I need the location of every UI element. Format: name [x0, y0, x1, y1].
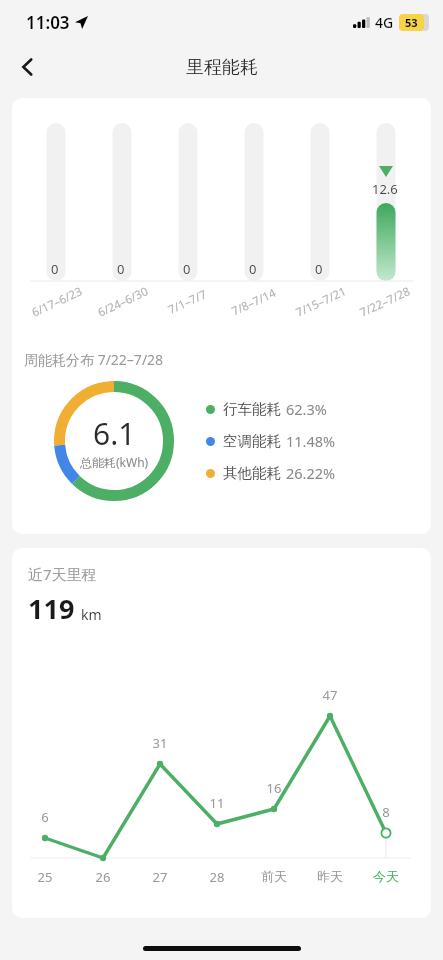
- staticText: 28: [201, 868, 233, 886]
- staticText: 25: [29, 868, 61, 886]
- button[interactable]: 行车能耗: [206, 399, 327, 419]
- staticText: 0: [51, 260, 59, 278]
- button[interactable]: 其他能耗: [206, 463, 336, 483]
- button[interactable]: Back: [8, 47, 48, 87]
- button[interactable]: 昨天: [314, 868, 346, 884]
- staticText: 空调能耗: [223, 432, 281, 450]
- staticText: 其他能耗: [223, 464, 281, 482]
- staticText: 7/22–7/28: [357, 283, 413, 321]
- staticText: 26: [87, 868, 119, 886]
- staticText: 119: [28, 590, 75, 627]
- staticText: 8: [372, 803, 400, 821]
- button[interactable]: 今天: [370, 868, 402, 884]
- staticText: 6/17–6/23: [29, 283, 85, 321]
- staticText: 16: [260, 779, 288, 797]
- staticText: 前天: [258, 868, 290, 884]
- button[interactable]: 26: [87, 868, 119, 886]
- staticText: 31: [146, 734, 174, 752]
- staticText: km: [81, 605, 102, 624]
- staticText: 12.6: [372, 180, 398, 198]
- button[interactable]: 27: [144, 868, 176, 886]
- button[interactable]: 前天: [258, 868, 290, 884]
- staticText: 7/1–7/7: [165, 286, 209, 318]
- staticText: 里程能耗: [186, 56, 258, 79]
- staticText: 6: [31, 808, 59, 826]
- staticText: 0: [249, 260, 257, 278]
- staticText: 7/8–7/14: [229, 285, 279, 319]
- staticText: 0: [117, 260, 125, 278]
- staticText: 26.22%: [286, 463, 336, 483]
- staticText: 周能耗分布 7/22–7/28: [24, 350, 164, 369]
- staticText: 11: [203, 794, 231, 812]
- button[interactable]: 28: [201, 868, 233, 886]
- staticText: 11.48%: [286, 431, 336, 451]
- staticText: 行车能耗: [223, 400, 281, 418]
- staticText: 47: [316, 686, 344, 704]
- button[interactable]: 25: [29, 868, 61, 886]
- staticText: 总能耗(kWh): [80, 454, 149, 470]
- staticText: 6/24–6/30: [95, 283, 151, 321]
- staticText: 0: [183, 260, 191, 278]
- staticText: 7/15–7/21: [293, 283, 349, 321]
- staticText: 0: [315, 260, 323, 278]
- staticText: 53: [405, 15, 418, 30]
- button[interactable]: 空调能耗: [206, 431, 336, 451]
- staticText: 昨天: [314, 868, 346, 884]
- staticText: 4G: [375, 13, 394, 32]
- staticText: 62.3%: [286, 399, 327, 419]
- staticText: 6.1: [93, 413, 136, 454]
- staticText: 今天: [370, 868, 402, 884]
- staticText: 近7天里程: [28, 564, 97, 584]
- staticText: 27: [144, 868, 176, 886]
- staticText: 11:03: [26, 11, 70, 34]
